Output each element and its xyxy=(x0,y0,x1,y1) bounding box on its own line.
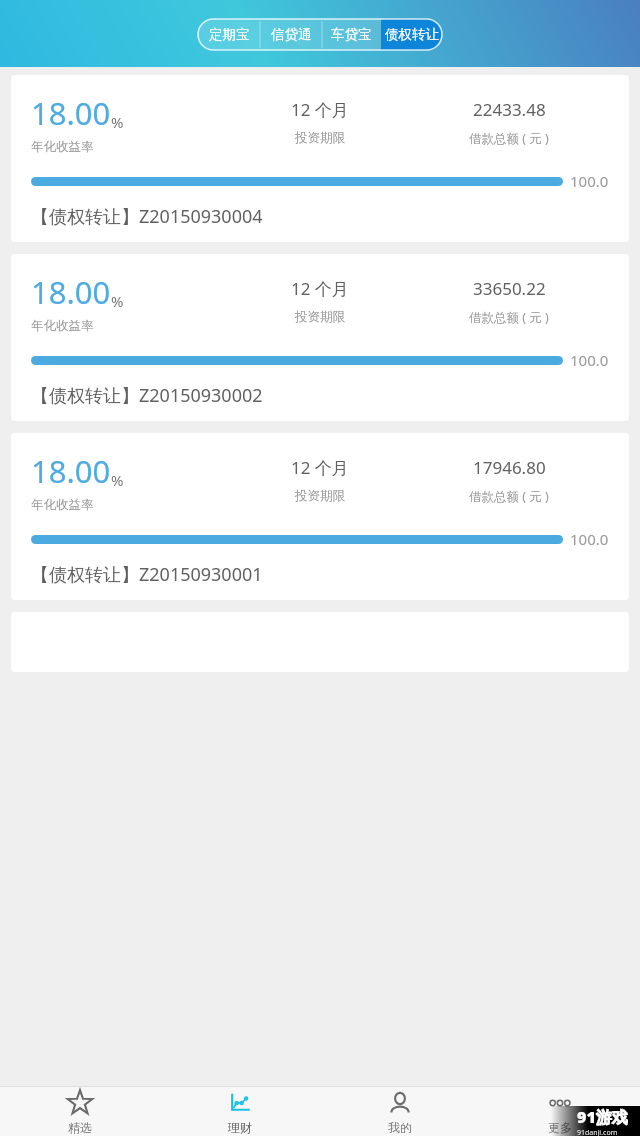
staticText: 100.0 xyxy=(570,529,609,549)
button[interactable]: 我的 xyxy=(320,1087,480,1136)
staticText: 年化收益率 xyxy=(31,497,94,513)
staticText: 我的 xyxy=(388,1120,412,1135)
staticText: 投资期限 xyxy=(295,130,345,146)
staticText: 借款总额 ( 元 ) xyxy=(469,488,549,505)
staticText: 年化收益率 xyxy=(31,318,94,334)
button[interactable]: 18.00 xyxy=(11,433,629,600)
staticText: 理财 xyxy=(228,1120,252,1135)
button[interactable]: 精选 xyxy=(0,1087,160,1136)
staticText: 投资期限 xyxy=(295,309,345,325)
staticText: 91游戏 xyxy=(577,1106,628,1128)
staticText: 借款总额 ( 元 ) xyxy=(469,309,549,326)
button[interactable]: 信贷通 xyxy=(260,19,322,50)
staticText: % xyxy=(111,112,124,132)
staticText: 【债权转让】Z20150930004 xyxy=(31,204,263,229)
staticText: 【债权转让】Z20150930002 xyxy=(31,383,263,408)
staticText: 12 个月 xyxy=(291,456,349,479)
staticText: 33650.22 xyxy=(473,277,546,300)
staticText: 更多 xyxy=(548,1120,572,1135)
staticText: 【债权转让】Z20150930001 xyxy=(31,562,263,587)
button[interactable]: 债权转让 xyxy=(381,19,442,50)
staticText: % xyxy=(111,470,124,490)
staticText: 100.0 xyxy=(570,171,609,191)
button[interactable]: 18.00 xyxy=(11,75,629,242)
button[interactable]: 更多 xyxy=(480,1087,640,1136)
staticText: 12 个月 xyxy=(291,98,349,121)
staticText: 12 个月 xyxy=(291,277,349,300)
staticText: 车贷宝 xyxy=(331,26,372,43)
button[interactable]: 理财 xyxy=(160,1087,320,1136)
staticText: 18.00 xyxy=(31,92,111,134)
staticText: 18.00 xyxy=(31,271,111,313)
staticText: 18.00 xyxy=(31,450,111,492)
staticText: 年化收益率 xyxy=(31,139,94,155)
staticText: 100.0 xyxy=(570,350,609,370)
staticText: 信贷通 xyxy=(271,26,312,43)
staticText: 定期宝 xyxy=(209,26,250,43)
staticText: % xyxy=(111,291,124,311)
staticText: 17946.80 xyxy=(473,456,546,479)
button[interactable]: 车贷宝 xyxy=(322,19,381,50)
staticText: 债权转让 xyxy=(385,26,439,43)
staticText: 投资期限 xyxy=(295,488,345,504)
staticText: 22433.48 xyxy=(473,98,546,121)
button[interactable]: 定期宝 xyxy=(198,19,260,50)
staticText: 借款总额 ( 元 ) xyxy=(469,130,549,147)
staticText: 精选 xyxy=(68,1120,92,1135)
staticText: 91danji.com xyxy=(577,1128,618,1136)
button[interactable]: 18.00 xyxy=(11,254,629,421)
